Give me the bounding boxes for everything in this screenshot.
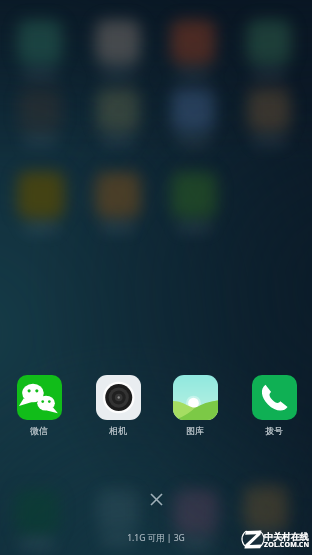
- staticText: 图库: [186, 425, 204, 436]
- button[interactable]: 微信: [7, 371, 71, 440]
- staticText: 微信: [30, 425, 48, 436]
- button[interactable]: 相机: [86, 371, 150, 440]
- staticText: 相机: [109, 425, 127, 436]
- staticText: 1.1G 可用 | 3G: [127, 532, 185, 544]
- button[interactable]: 拨号: [242, 371, 306, 440]
- staticText: 拨号: [265, 425, 283, 436]
- staticText: 中关村在线: [264, 531, 309, 542]
- button[interactable]: Close: [139, 482, 173, 516]
- button[interactable]: 图库: [163, 371, 227, 440]
- staticText: ZOL.COM.CN: [264, 540, 310, 550]
